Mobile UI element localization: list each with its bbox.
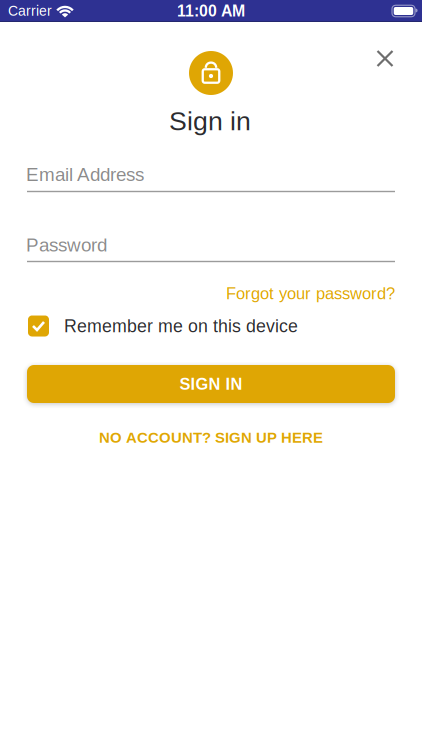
staticText: NO ACCOUNT? SIGN UP HERE: [99, 429, 323, 446]
staticText: Remember me on this device: [64, 316, 298, 336]
button[interactable]: Forgot your password?: [226, 284, 395, 303]
button[interactable]: Remember me on this device: [28, 315, 298, 336]
button[interactable]: NO ACCOUNT? SIGN UP HERE: [99, 429, 323, 446]
staticText: Forgot your password?: [226, 284, 395, 303]
staticText: 11:00 AM: [177, 2, 245, 20]
staticText: Sign in: [169, 106, 251, 136]
button[interactable]: [365, 39, 404, 78]
staticText: Email Address: [26, 164, 144, 185]
staticText: Password: [26, 234, 107, 255]
button[interactable]: SIGN IN: [27, 365, 395, 403]
staticText: SIGN IN: [179, 375, 242, 393]
staticText: Carrier: [8, 3, 52, 19]
